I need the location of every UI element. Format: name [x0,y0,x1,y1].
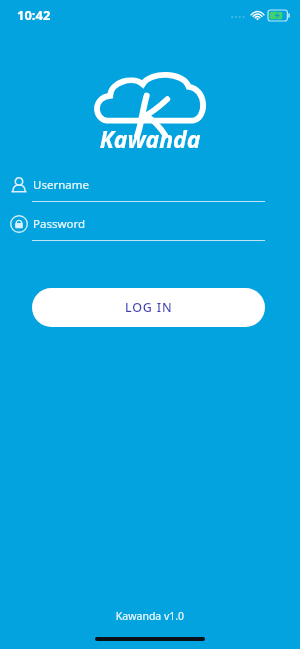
staticText: Password [33,216,86,232]
staticText: Kawanda v1.0 [0,609,300,623]
button[interactable]: Username [0,172,300,206]
staticText: Kawanda [0,123,300,154]
staticText: 10:42 [17,6,51,24]
staticText: Username [33,177,89,193]
button[interactable]: Password [0,211,300,245]
staticText: LOG IN [125,299,173,316]
button[interactable]: LOG IN [32,288,265,327]
